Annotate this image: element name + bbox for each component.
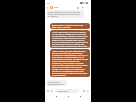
staticText: A mes côtés l'aube, de savoir les besoin… [52, 31, 88, 47]
button[interactable]: C'est d'accord [46, 80, 67, 86]
button[interactable]: Recent apps [78, 94, 82, 98]
button[interactable]: Je ne promets rien, mais si ça se passe … [46, 10, 84, 18]
button[interactable]: Emoji [46, 89, 50, 93]
staticText: 9:41 [47, 2, 51, 4]
button[interactable]: Défilait su moi, c'est pas important pou… [50, 49, 90, 77]
staticText: Message RCS [57, 90, 69, 93]
button[interactable]: Message RCS [55, 89, 79, 93]
button[interactable]: Call [81, 6, 85, 10]
staticText: Paul [54, 6, 59, 9]
button[interactable]: Microphone [86, 89, 90, 93]
staticText: Je ne promets rien, mais si ça se passe … [48, 11, 82, 17]
staticText: C'est d'accord [48, 81, 60, 83]
button[interactable]: Back [54, 94, 58, 98]
button[interactable]: A mes côtés l'aube, de savoir les besoin… [50, 30, 90, 48]
button[interactable]: Attach image [50, 89, 54, 93]
button[interactable]: More options [86, 6, 90, 10]
button[interactable]: J'avais toujours envie de l'avoir à mes … [50, 23, 90, 29]
button[interactable]: Home [66, 94, 70, 98]
button[interactable]: Contact photo [50, 6, 53, 9]
staticText: J'avais toujours envie de l'avoir à mes … [52, 24, 88, 28]
staticText: P [51, 6, 53, 9]
button[interactable]: Back [46, 6, 50, 10]
button[interactable]: Video call [76, 6, 80, 10]
button[interactable]: Camera [82, 89, 86, 93]
staticText: Je pense l'envoie ça [48, 83, 65, 85]
staticText: Défilait su moi, c'est pas important pou… [52, 50, 88, 76]
